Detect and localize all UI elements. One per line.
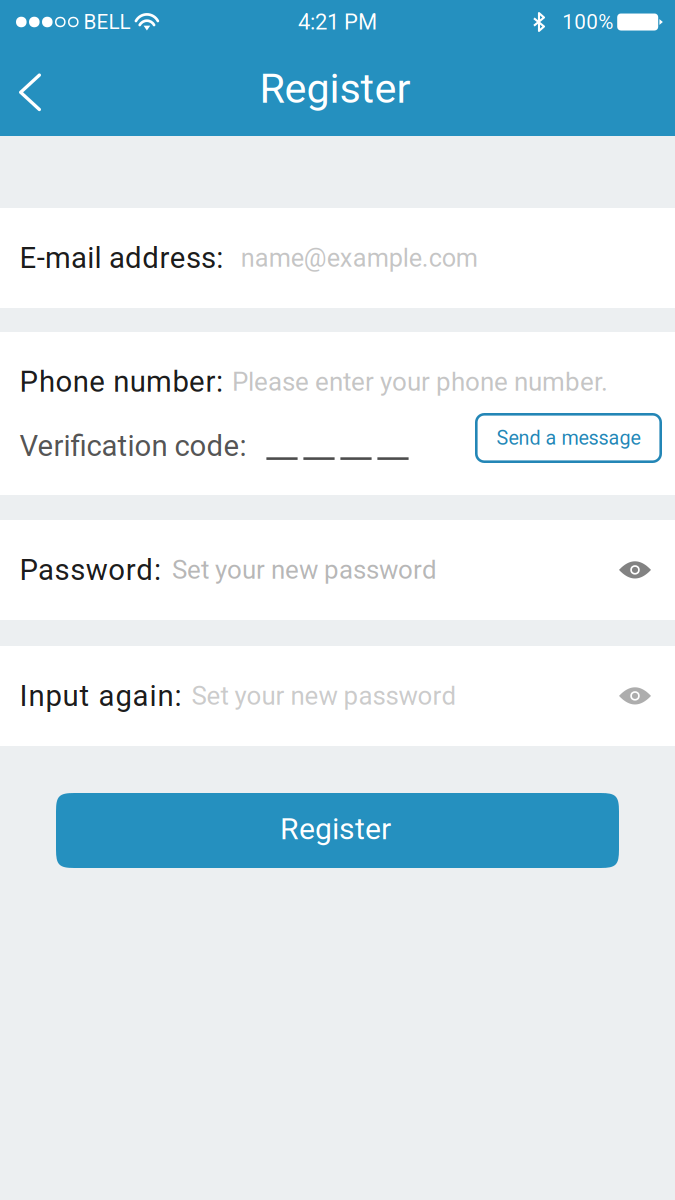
staticText: 4:21 PM bbox=[298, 9, 377, 35]
staticText: Phone number: bbox=[19, 365, 223, 399]
staticText: Send a message bbox=[496, 426, 640, 449]
button[interactable]: Register bbox=[56, 793, 619, 868]
staticText: Set your new password bbox=[191, 681, 456, 711]
staticText: Password: bbox=[19, 553, 161, 587]
staticText: name@example.com bbox=[241, 243, 478, 273]
button[interactable]: Send a message bbox=[475, 413, 662, 463]
button[interactable]: Back bbox=[0, 59, 60, 121]
staticText: BELL bbox=[84, 10, 131, 34]
staticText: Verification code: bbox=[19, 429, 246, 463]
staticText: Register bbox=[280, 811, 391, 847]
button[interactable]: Show password bbox=[607, 542, 663, 598]
staticText: E-mail address: bbox=[19, 241, 223, 275]
staticText: Set your new password bbox=[172, 555, 437, 585]
staticText: Please enter your phone number. bbox=[232, 367, 608, 397]
staticText: Input again: bbox=[19, 679, 181, 713]
staticText: 100% bbox=[562, 10, 613, 34]
button[interactable]: Show password bbox=[607, 668, 663, 724]
staticText: Register bbox=[259, 64, 410, 113]
